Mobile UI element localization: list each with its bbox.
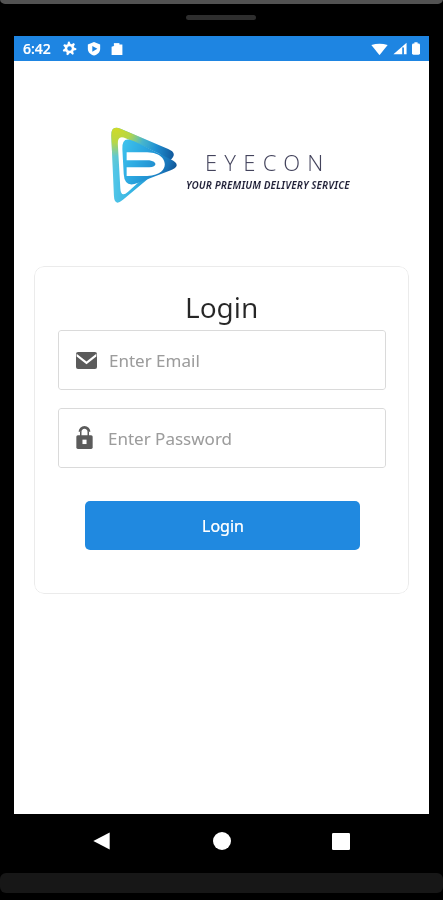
button[interactable]: Home <box>199 825 244 857</box>
staticText: EYECON <box>205 147 331 177</box>
staticText: Enter Password <box>108 427 233 450</box>
staticText: YOUR PREMIUM DELIVERY SERVICE <box>186 178 350 192</box>
button[interactable]: Back <box>79 825 124 857</box>
staticText: Login <box>185 288 259 326</box>
staticText: Login <box>202 515 244 537</box>
button[interactable]: Enter Email <box>58 330 386 390</box>
staticText: Enter Email <box>109 349 200 372</box>
button[interactable]: Recent apps <box>318 825 363 857</box>
button[interactable]: Enter Password <box>58 408 386 468</box>
button[interactable]: Login <box>85 501 360 550</box>
staticText: 6:42 <box>23 39 51 58</box>
